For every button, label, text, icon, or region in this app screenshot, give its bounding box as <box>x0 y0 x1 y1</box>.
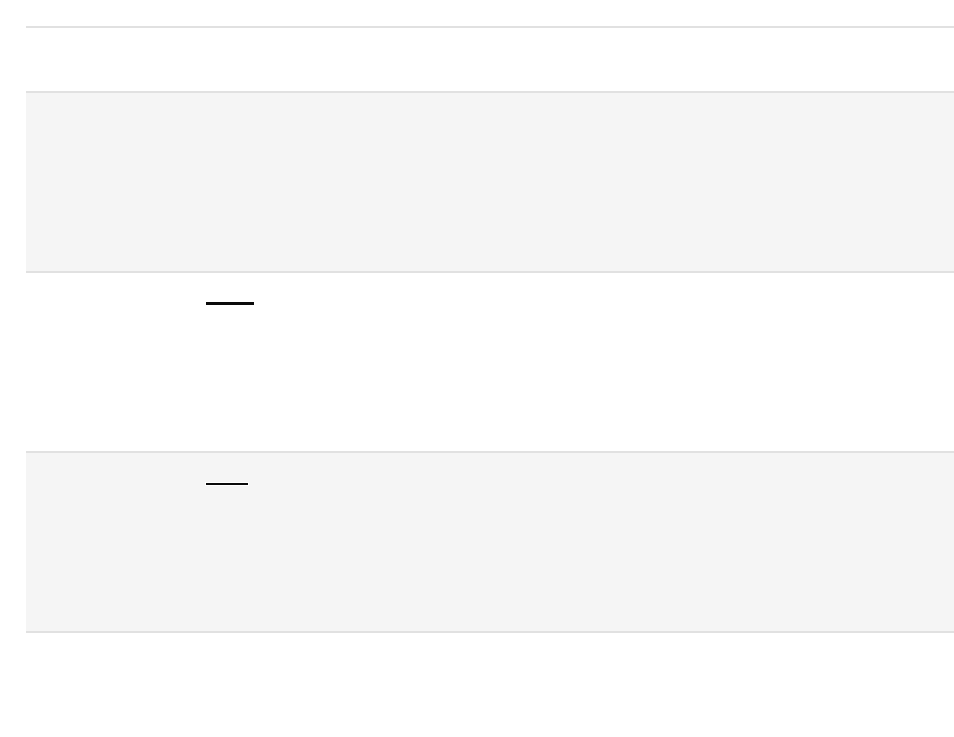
button[interactable]: Link <box>205 482 249 486</box>
button[interactable]: Section two <box>26 451 954 633</box>
